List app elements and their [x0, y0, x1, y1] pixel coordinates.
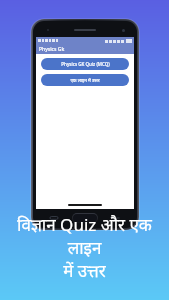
button[interactable]: Back: [112, 214, 120, 222]
button[interactable]: एक लाइन में उत्तर: [41, 74, 129, 86]
staticText: Physics Gk: [39, 46, 65, 53]
button[interactable]: Home: [72, 213, 98, 223]
staticText: में उत्तर: [63, 259, 106, 282]
staticText: विज्ञान Quiz और एक लाइन: [8, 213, 161, 259]
button[interactable]: Physics GK Quiz (MCQ): [41, 58, 129, 70]
staticText: एक लाइन में उत्तर: [70, 77, 100, 83]
staticText: Physics GK Quiz (MCQ): [61, 61, 110, 67]
button[interactable]: Physics Gk: [36, 44, 134, 54]
button[interactable]: Recents: [50, 214, 58, 222]
